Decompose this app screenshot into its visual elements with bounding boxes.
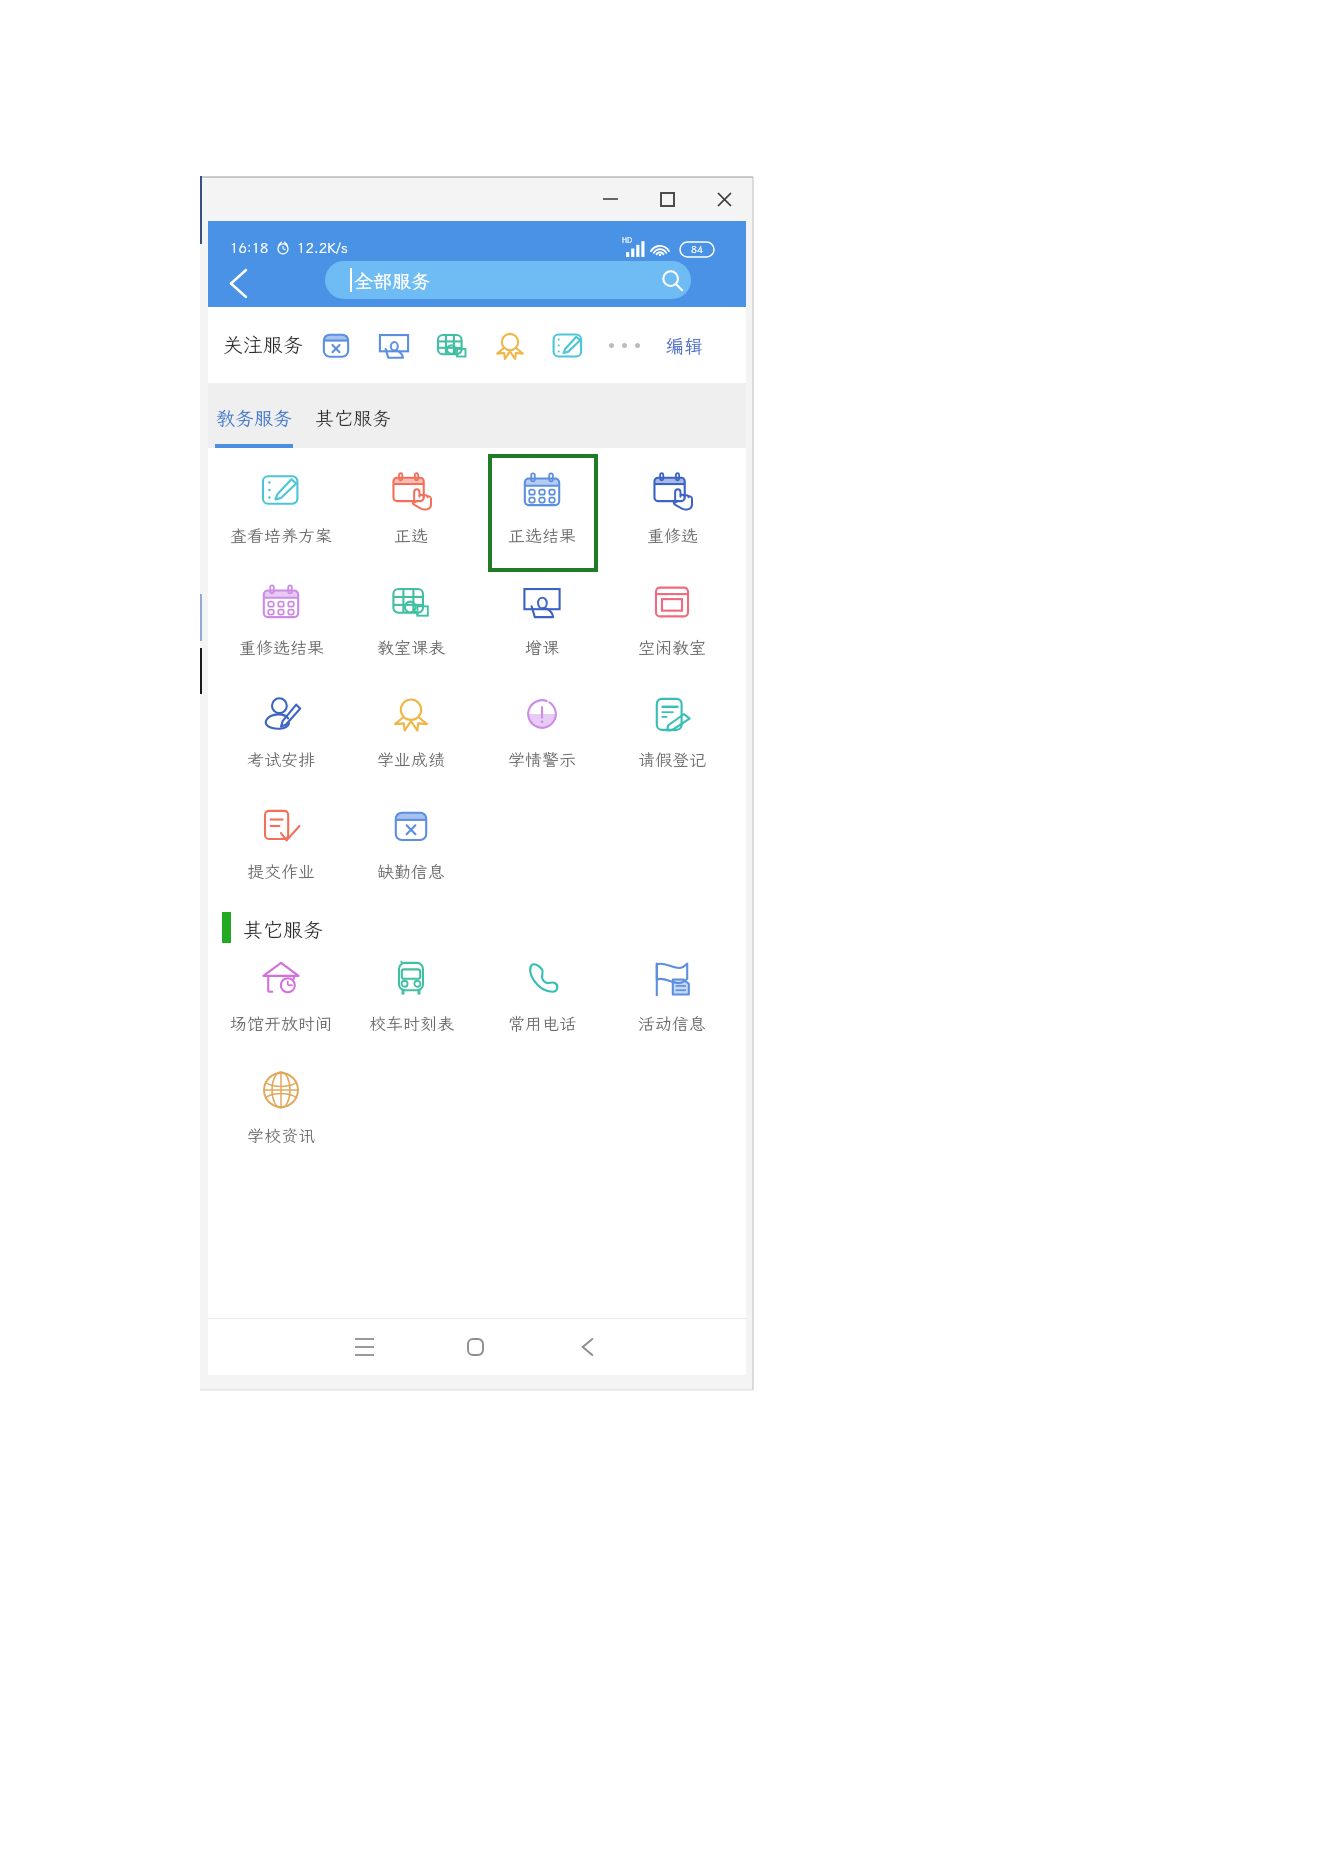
button[interactable]: 正选 bbox=[357, 448, 465, 560]
button[interactable]: 缺勤信息 bbox=[315, 323, 357, 367]
button[interactable]: 学情警示 bbox=[488, 672, 596, 784]
staticText: 16:18 bbox=[230, 239, 269, 257]
staticText: 关注服务 bbox=[223, 331, 303, 357]
staticText: 重修选结果 bbox=[239, 636, 324, 658]
button[interactable]: 查看培养方案 bbox=[547, 323, 589, 367]
staticText: 84 bbox=[691, 243, 703, 256]
staticText: 其它服务 bbox=[315, 405, 392, 430]
button[interactable]: 提交作业 bbox=[227, 784, 335, 896]
button[interactable]: 活动信息 bbox=[618, 936, 726, 1048]
button[interactable]: 学业成绩 bbox=[357, 672, 465, 784]
button[interactable]: 常用电话 bbox=[488, 936, 596, 1048]
button[interactable]: 增课 bbox=[373, 323, 415, 367]
button[interactable]: 查看培养方案 bbox=[227, 448, 335, 560]
button[interactable]: 学业成绩 bbox=[489, 323, 531, 367]
staticText: 增课 bbox=[525, 636, 559, 658]
button[interactable]: Back bbox=[216, 261, 260, 305]
staticText: 缺勤信息 bbox=[377, 860, 445, 882]
button[interactable]: 全部服务 bbox=[325, 261, 691, 299]
button[interactable]: Minimize bbox=[582, 177, 639, 221]
button[interactable]: Close bbox=[696, 177, 753, 221]
staticText: 编辑 bbox=[665, 333, 704, 358]
staticText: 查看培养方案 bbox=[230, 524, 332, 546]
staticText: 校车时刻表 bbox=[369, 1012, 454, 1034]
button[interactable]: 正选结果 bbox=[488, 448, 596, 560]
button[interactable]: Maximize bbox=[639, 177, 696, 221]
staticText: 其它服务 bbox=[243, 916, 323, 942]
button[interactable]: Home bbox=[451, 1323, 499, 1371]
button[interactable]: 重修选 bbox=[618, 448, 726, 560]
button[interactable]: 缺勤信息 bbox=[357, 784, 465, 896]
button[interactable]: 校车时刻表 bbox=[357, 936, 465, 1048]
button[interactable]: 教室课表 bbox=[357, 560, 465, 672]
staticText: 考试安排 bbox=[247, 748, 315, 770]
staticText: HD bbox=[622, 236, 632, 245]
button[interactable]: 学校资讯 bbox=[227, 1048, 335, 1160]
button[interactable]: 空闲教室 bbox=[618, 560, 726, 672]
button[interactable]: 场馆开放时间 bbox=[227, 936, 335, 1048]
button[interactable]: 请假登记 bbox=[618, 672, 726, 784]
staticText: 全部服务 bbox=[354, 268, 431, 293]
staticText: 空闲教室 bbox=[638, 636, 706, 658]
staticText: 学业成绩 bbox=[377, 748, 445, 770]
staticText: 常用电话 bbox=[508, 1012, 576, 1034]
staticText: 场馆开放时间 bbox=[230, 1012, 332, 1034]
staticText: 正选结果 bbox=[508, 524, 576, 546]
button[interactable]: 增课 bbox=[488, 560, 596, 672]
button[interactable]: Back bbox=[563, 1323, 611, 1371]
button[interactable]: 教务服务 bbox=[215, 383, 293, 448]
button[interactable]: Recent apps bbox=[340, 1323, 388, 1371]
button[interactable]: 重修选结果 bbox=[227, 560, 335, 672]
staticText: 12.2K/s bbox=[297, 239, 348, 257]
staticText: 活动信息 bbox=[638, 1012, 706, 1034]
button[interactable]: More services bbox=[605, 325, 647, 365]
staticText: 正选 bbox=[394, 524, 428, 546]
staticText: 教室课表 bbox=[377, 636, 445, 658]
staticText: 提交作业 bbox=[247, 860, 315, 882]
button[interactable]: 其它服务 bbox=[314, 383, 392, 448]
button[interactable]: 考试安排 bbox=[227, 672, 335, 784]
staticText: 请假登记 bbox=[638, 748, 706, 770]
button[interactable]: 教室课表 bbox=[431, 323, 473, 367]
staticText: 学情警示 bbox=[508, 748, 576, 770]
staticText: 重修选 bbox=[647, 524, 698, 546]
button[interactable]: 编辑 bbox=[660, 323, 708, 367]
staticText: 教务服务 bbox=[216, 405, 293, 430]
staticText: 学校资讯 bbox=[247, 1124, 315, 1146]
